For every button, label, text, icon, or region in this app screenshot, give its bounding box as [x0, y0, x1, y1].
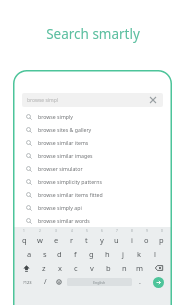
button[interactable]: Shift [16, 261, 36, 275]
staticText: b [106, 263, 111, 273]
button[interactable]: / [38, 275, 52, 289]
staticText: / [44, 277, 47, 287]
button[interactable]: g [83, 247, 99, 261]
staticText: n [122, 263, 127, 273]
staticText: English [93, 280, 106, 285]
staticText: 0 [161, 229, 163, 233]
button[interactable]: browse similar images [13, 149, 172, 162]
staticText: browse similar items fitted [38, 191, 103, 198]
staticText: browse simply api [38, 204, 82, 211]
staticText: browse simply [38, 113, 73, 120]
staticText: . [139, 277, 141, 287]
staticText: 7 [116, 229, 118, 233]
staticText: e [54, 235, 59, 245]
staticText: a [27, 249, 32, 259]
staticText: browse simplicity patterns [38, 178, 102, 185]
button[interactable]: x [52, 261, 68, 275]
staticText: u [114, 235, 119, 245]
staticText: d [57, 249, 62, 259]
staticText: v [90, 263, 94, 273]
staticText: 3 [55, 229, 57, 233]
staticText: ?123 [23, 280, 32, 285]
button[interactable]: browse similar items [13, 136, 172, 149]
button[interactable]: u [109, 233, 124, 247]
staticText: browse sites & gallery [38, 126, 92, 133]
staticText: 1 [23, 229, 25, 233]
staticText: j [122, 249, 124, 259]
button[interactable]: browse simply [13, 110, 172, 123]
staticText: g [89, 249, 94, 259]
button[interactable]: English [67, 278, 132, 286]
staticText: Search smartly [46, 25, 140, 43]
staticText: t [85, 235, 88, 245]
staticText: s [43, 249, 47, 259]
button[interactable]: Emoji [52, 275, 66, 289]
button[interactable]: i [124, 233, 139, 247]
button[interactable]: e [48, 233, 64, 247]
button[interactable]: w [32, 233, 48, 247]
staticText: f [74, 249, 77, 259]
staticText: m [136, 263, 144, 273]
button[interactable]: h [99, 247, 115, 261]
button[interactable]: b [100, 261, 116, 275]
staticText: i [131, 235, 133, 245]
button[interactable]: k [131, 247, 147, 261]
staticText: 5 [86, 229, 88, 233]
staticText: 2 [39, 229, 41, 233]
staticText: x [58, 263, 62, 273]
button[interactable]: q [16, 233, 32, 247]
staticText: browse similar items [38, 139, 89, 146]
staticText: 9 [146, 229, 148, 233]
button[interactable]: j [115, 247, 131, 261]
staticText: 8 [131, 229, 133, 233]
button[interactable]: n [116, 261, 132, 275]
button[interactable]: c [68, 261, 84, 275]
button[interactable]: d [52, 247, 67, 261]
button[interactable]: browse simply api [13, 201, 172, 214]
button[interactable]: browser simulator [13, 162, 172, 175]
button[interactable]: l [147, 247, 163, 261]
staticText: y [100, 235, 104, 245]
staticText: browse similar words [38, 217, 90, 224]
staticText: k [137, 249, 142, 259]
button[interactable]: browse similar items fitted [13, 188, 172, 201]
button[interactable]: browse simplicity patterns [13, 175, 172, 188]
button[interactable]: z [36, 261, 52, 275]
button[interactable]: f [67, 247, 83, 261]
staticText: c [74, 263, 78, 273]
button[interactable]: t [79, 233, 94, 247]
staticText: q [22, 235, 27, 245]
button[interactable]: Backspace [148, 261, 169, 275]
staticText: o [144, 235, 149, 245]
button[interactable]: . [133, 275, 147, 289]
button[interactable]: Search [147, 275, 169, 289]
staticText: p [159, 235, 164, 245]
staticText: browser simulator [38, 165, 83, 172]
staticText: 6 [101, 229, 103, 233]
staticText: browse similar images [38, 152, 93, 159]
button[interactable]: browse simpl [22, 93, 163, 107]
staticText: w [37, 235, 43, 245]
button[interactable]: s [37, 247, 52, 261]
button[interactable]: Clear search [148, 95, 158, 105]
button[interactable]: v [84, 261, 100, 275]
button[interactable]: p [154, 233, 169, 247]
staticText: l [154, 249, 156, 259]
button[interactable]: ?123 [16, 275, 38, 289]
button[interactable]: m [132, 261, 148, 275]
button[interactable]: browse similar words [13, 214, 172, 227]
button[interactable]: browse sites & gallery [13, 123, 172, 136]
button[interactable]: y [94, 233, 109, 247]
button[interactable]: a [22, 247, 37, 261]
staticText: browse simpl [27, 97, 148, 104]
staticText: r [70, 235, 74, 245]
staticText: 4 [71, 229, 73, 233]
button[interactable]: r [64, 233, 79, 247]
staticText: h [105, 249, 110, 259]
staticText: z [42, 263, 46, 273]
button[interactable]: o [139, 233, 154, 247]
